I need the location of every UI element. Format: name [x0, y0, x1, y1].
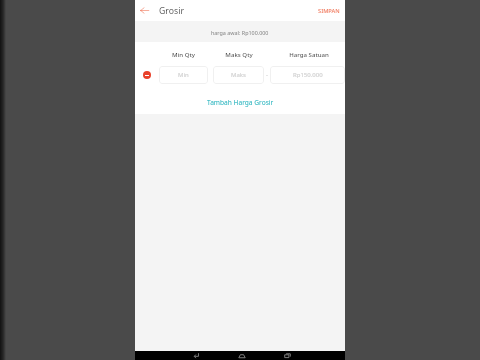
staticText: Rp150.000 [293, 71, 323, 79]
staticText: Min Qty [172, 50, 195, 58]
button[interactable]: Maks [213, 66, 264, 84]
button[interactable]: Recents [280, 351, 294, 360]
button[interactable]: Min [159, 66, 208, 84]
button[interactable]: Rp150.000 [270, 66, 345, 84]
button[interactable]: Tambah Harga Grosir [203, 97, 278, 108]
button[interactable]: Back [135, 0, 153, 21]
staticText: Harga Satuan [289, 50, 329, 58]
button[interactable]: SIMPAN [312, 0, 345, 21]
staticText: - [266, 71, 268, 79]
staticText: SIMPAN [318, 7, 340, 15]
staticText: Grosir [159, 5, 184, 17]
button[interactable]: Remove row [135, 66, 159, 84]
button[interactable]: Home [235, 351, 249, 360]
button[interactable]: Back [189, 351, 203, 360]
staticText: Min [178, 71, 189, 79]
staticText: harga awal: Rp100.000 [211, 29, 269, 36]
staticText: Tambah Harga Grosir [207, 98, 274, 107]
staticText: Maks [231, 71, 246, 79]
staticText: Maks Qty [225, 50, 253, 58]
